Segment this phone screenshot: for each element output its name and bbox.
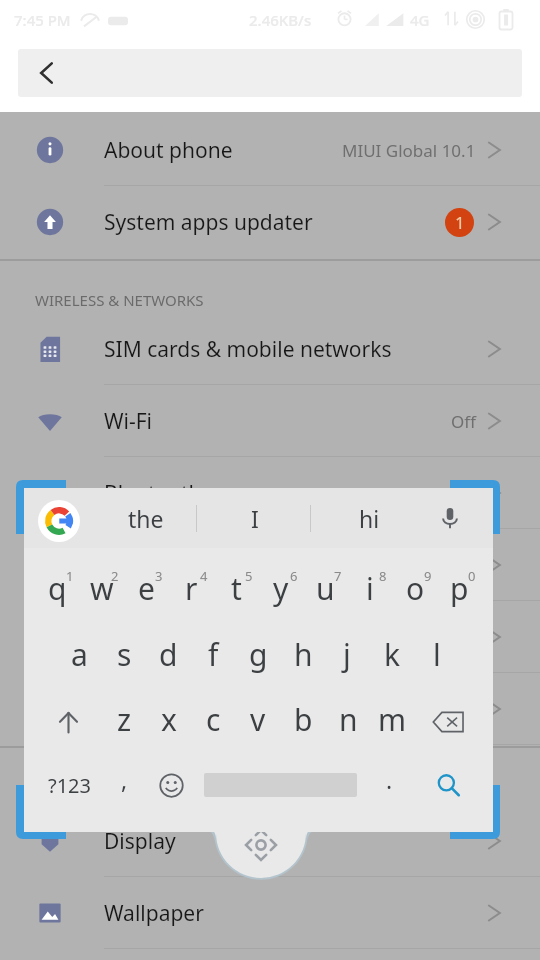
button[interactable]: Backspace (419, 694, 477, 750)
staticText: Additional settings (104, 551, 289, 580)
button[interactable]: k (370, 629, 414, 685)
button[interactable]: I (199, 488, 311, 548)
button[interactable]: Google Assistant (38, 500, 80, 542)
button[interactable]: e (124, 563, 168, 619)
button[interactable]: b (281, 694, 325, 750)
staticText: l (433, 634, 441, 675)
button[interactable]: z (102, 694, 146, 750)
staticText: 1 (455, 211, 465, 234)
button[interactable]: Move keyboard (196, 800, 326, 896)
staticText: I (251, 503, 259, 534)
button[interactable]: Back (18, 49, 522, 97)
button[interactable]: Lock screen & password (0, 601, 540, 673)
button[interactable]: Notifications & status bar (0, 673, 540, 745)
button[interactable]: hi (313, 488, 425, 548)
staticText: d (159, 634, 178, 675)
staticText: 4 (200, 567, 208, 585)
staticText: 5 (245, 567, 253, 585)
staticText: Display (104, 827, 176, 856)
button[interactable]: x (147, 694, 191, 750)
button[interactable]: ?123 (33, 757, 105, 813)
staticText: c (206, 699, 221, 740)
staticText: a (71, 634, 88, 675)
button[interactable]: y (259, 563, 303, 619)
button[interactable]: Additional settings (0, 529, 540, 601)
staticText: h (294, 634, 313, 675)
button[interactable]: l (415, 629, 459, 685)
staticText: r (185, 568, 198, 609)
staticText: MIUI Global 10.1 (342, 139, 476, 162)
button[interactable]: w (80, 563, 124, 619)
staticText: WIRELESS & NETWORKS (35, 290, 204, 310)
staticText: x (161, 699, 177, 740)
staticText: q (48, 568, 67, 609)
staticText: 0 (468, 567, 476, 585)
staticText: 9 (424, 567, 432, 585)
button[interactable]: c (191, 694, 235, 750)
button[interactable]: f (191, 629, 235, 685)
staticText: 2 (111, 567, 119, 585)
staticText: w (90, 568, 114, 609)
staticText: j (343, 634, 351, 675)
button[interactable]: Shift (40, 694, 96, 750)
staticText: 3 (155, 567, 163, 585)
button[interactable]: System apps updater (0, 186, 540, 258)
button[interactable]: j (325, 629, 369, 685)
button[interactable]: Space (204, 757, 357, 813)
staticText: k (384, 634, 401, 675)
staticText: s (117, 634, 132, 675)
button[interactable]: n (326, 694, 370, 750)
button[interactable]: Search (419, 757, 477, 813)
staticText: 7 (334, 567, 342, 585)
staticText: hi (359, 503, 380, 534)
staticText: Lock screen & password (104, 623, 342, 652)
staticText: z (117, 699, 132, 740)
button[interactable]: p (437, 563, 481, 619)
button[interactable]: q (35, 563, 79, 619)
button[interactable]: d (146, 629, 190, 685)
staticText: u (316, 568, 335, 609)
staticText: g (249, 634, 268, 675)
staticText: 4G (410, 10, 430, 30)
staticText: the (128, 503, 164, 534)
button[interactable]: v (236, 694, 280, 750)
staticText: , (121, 764, 128, 795)
button[interactable]: h (281, 629, 325, 685)
button[interactable]: r (169, 563, 213, 619)
button[interactable]: g (236, 629, 280, 685)
button[interactable]: s (102, 629, 146, 685)
staticText: 1 (66, 567, 74, 585)
staticText: o (406, 568, 425, 609)
staticText: SIM cards & mobile networks (104, 335, 392, 364)
staticText: t (231, 568, 242, 609)
staticText: Wi-Fi (104, 407, 153, 436)
button[interactable]: . (368, 757, 410, 813)
button[interactable]: o (393, 563, 437, 619)
button[interactable]: Wi-Fi (0, 385, 540, 457)
button[interactable]: SIM cards & mobile networks (0, 313, 540, 385)
button[interactable]: Display (0, 805, 540, 877)
button[interactable]: , (103, 757, 145, 813)
button[interactable]: Emoji (148, 757, 194, 813)
button[interactable]: Wallpaper (0, 877, 540, 949)
button[interactable]: Bluetooth (0, 457, 540, 529)
button[interactable]: i (348, 563, 392, 619)
staticText: 2.46KB/s (249, 10, 312, 30)
staticText: m (378, 699, 407, 740)
button[interactable]: m (370, 694, 414, 750)
staticText: v (250, 699, 266, 740)
button[interactable]: About phone (0, 114, 540, 186)
button[interactable]: Back (30, 57, 62, 89)
button[interactable]: the (88, 488, 204, 548)
staticText: . (386, 764, 393, 795)
staticText: i (366, 568, 374, 609)
staticText: System apps updater (104, 208, 313, 237)
button[interactable]: a (57, 629, 101, 685)
button[interactable]: t (214, 563, 258, 619)
staticText: ?123 (48, 772, 91, 799)
staticText: 7:45 PM (14, 10, 71, 30)
button[interactable]: Voice input (424, 488, 476, 548)
button[interactable]: u (303, 563, 347, 619)
staticText: Off (451, 410, 476, 433)
